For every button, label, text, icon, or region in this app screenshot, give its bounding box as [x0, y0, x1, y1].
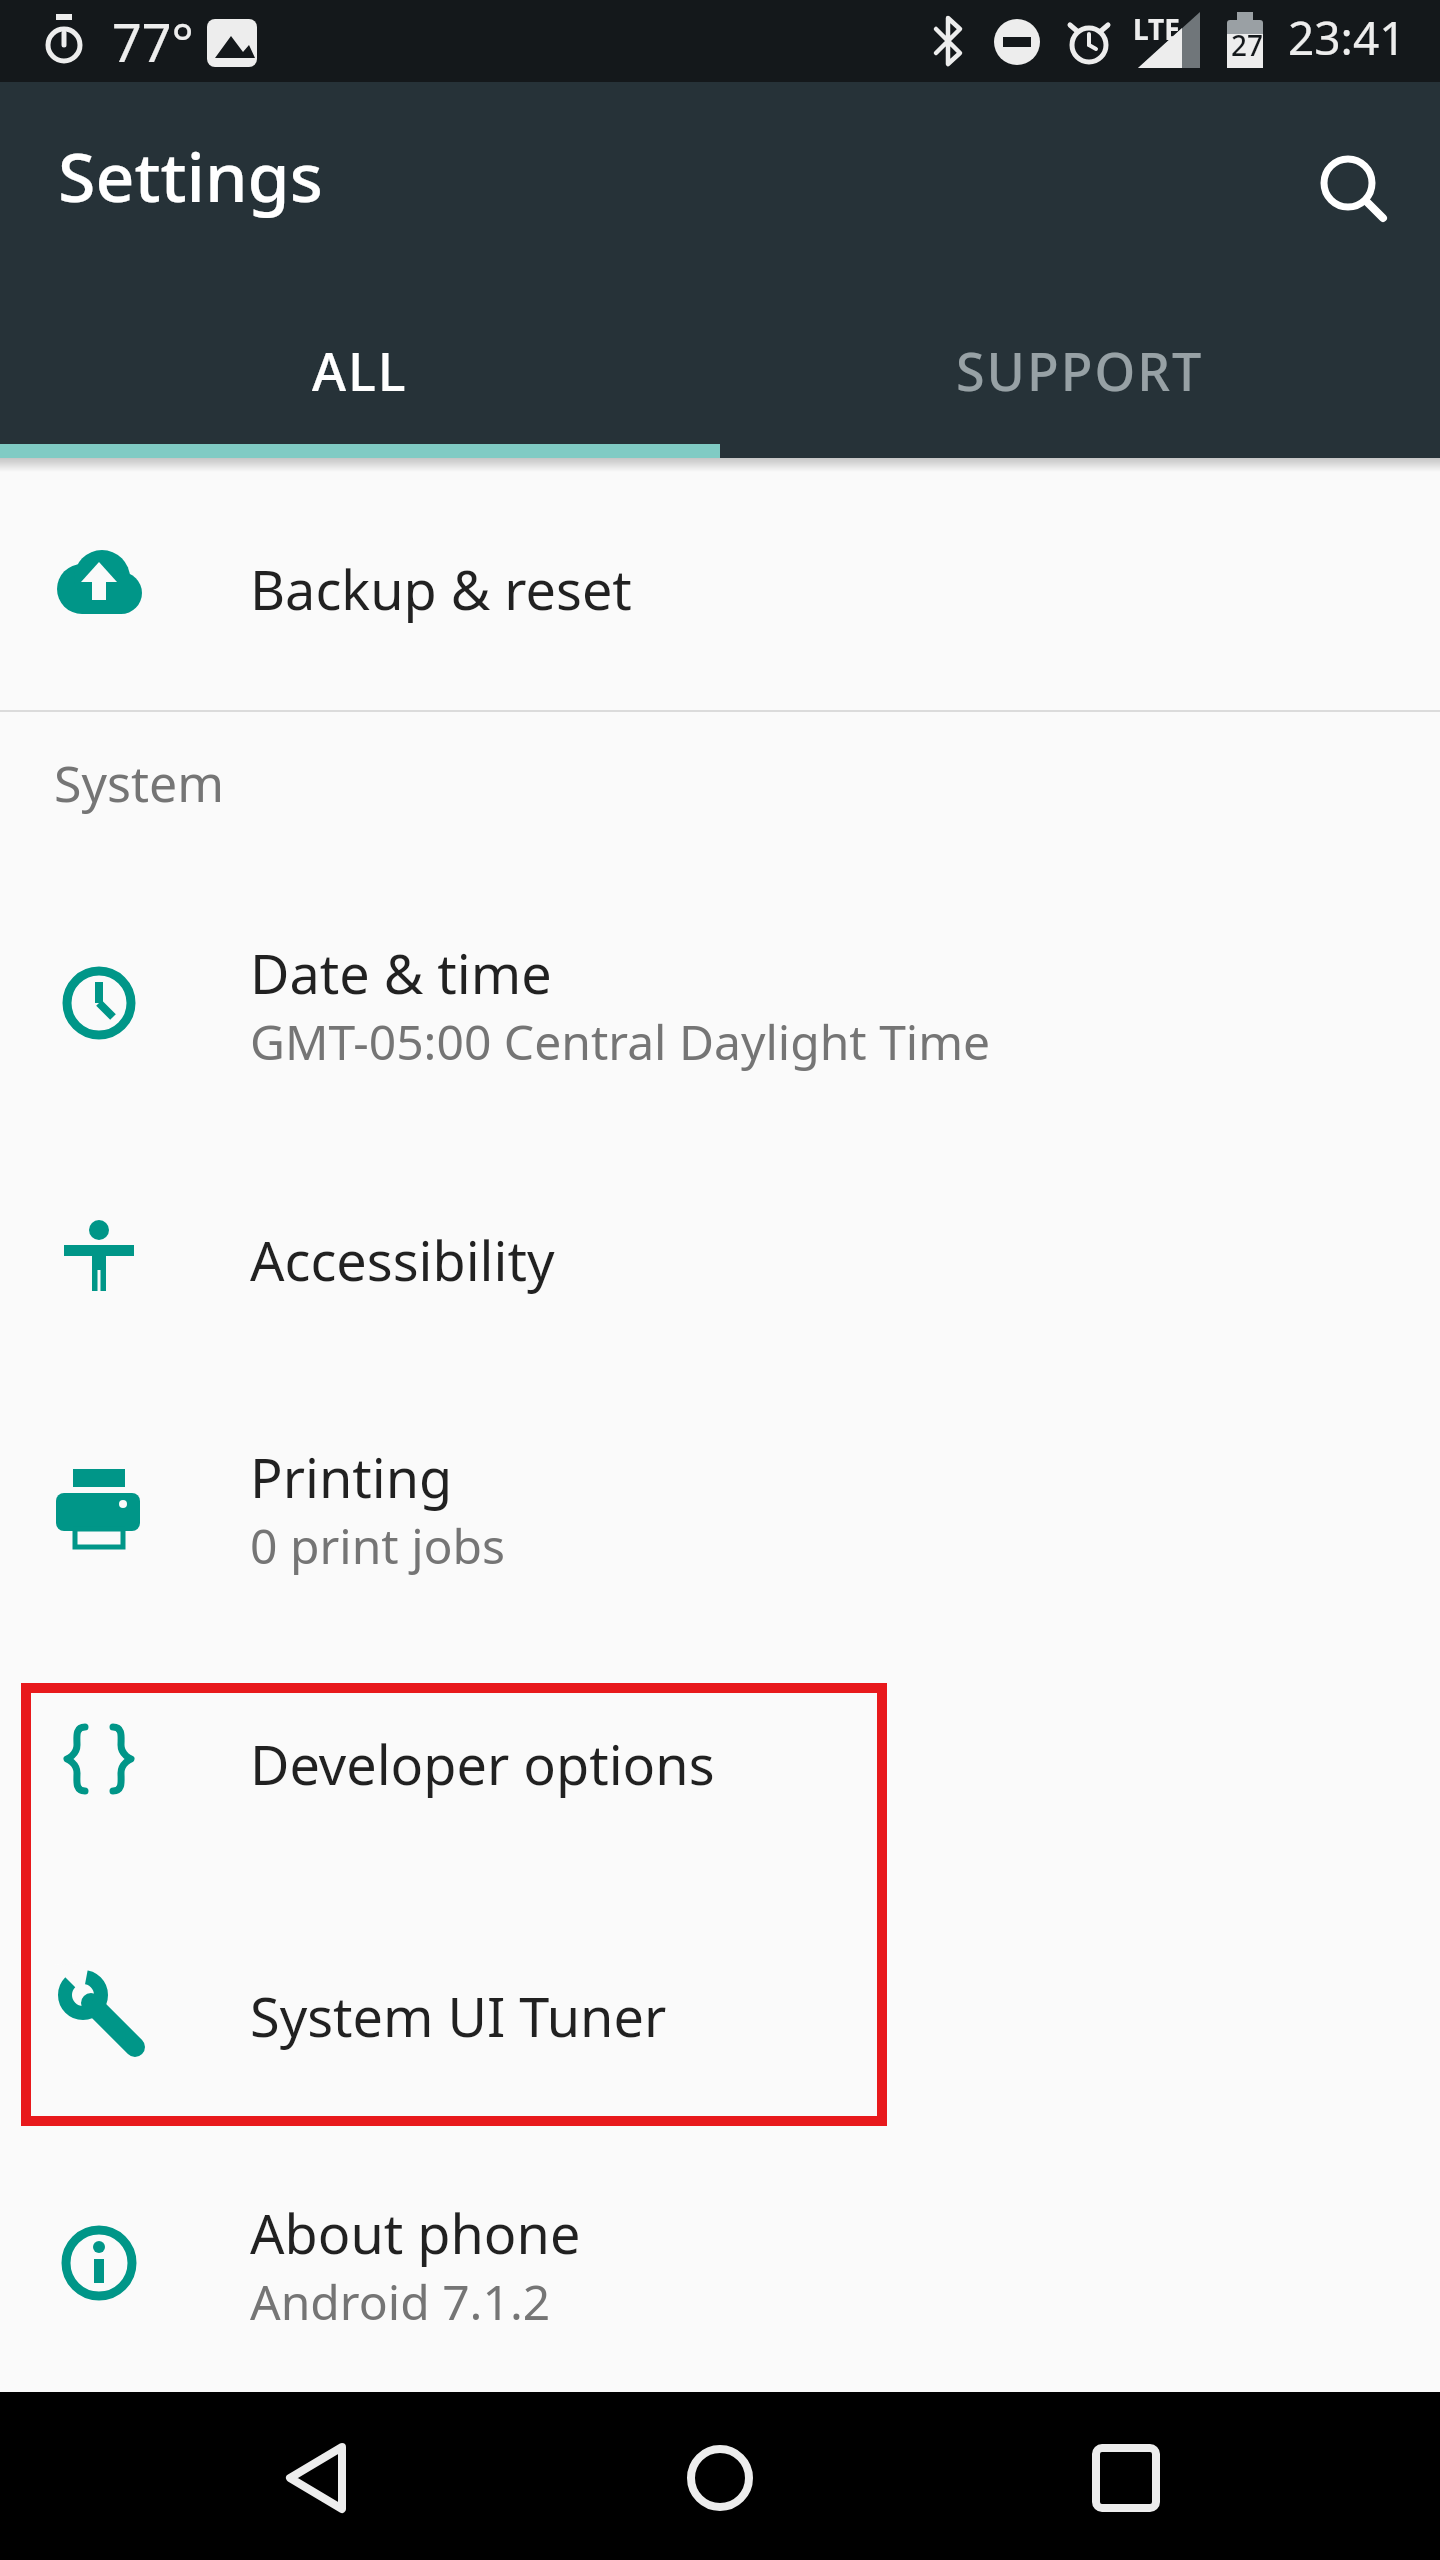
staticText: 23:41 — [1288, 6, 1406, 69]
staticText: Printing — [250, 1440, 453, 1514]
staticText: GMT-05:00 Central Daylight Time — [250, 1009, 991, 1074]
staticText: 77° — [112, 6, 194, 77]
staticText: LTE — [1133, 10, 1180, 48]
button[interactable] — [960, 2392, 1440, 2560]
staticText: SUPPORT — [956, 335, 1204, 406]
staticText: 0 print jobs — [250, 1513, 506, 1578]
staticText: System — [54, 749, 224, 817]
button[interactable]: Printing — [0, 1381, 1440, 1633]
staticText: Settings — [58, 129, 323, 222]
staticText: 27 — [1231, 26, 1264, 64]
button[interactable] — [0, 2392, 480, 2560]
button[interactable]: SUPPORT — [720, 282, 1440, 458]
button[interactable]: Date & time — [0, 877, 1440, 1129]
staticText: Accessibility — [250, 1223, 555, 1297]
staticText: ALL — [312, 335, 408, 406]
button[interactable] — [1322, 157, 1386, 221]
staticText: Date & time — [250, 936, 552, 1010]
button[interactable]: Developer options — [0, 1633, 1440, 1885]
button[interactable]: ALL — [0, 282, 720, 458]
button[interactable]: Accessibility — [0, 1129, 1440, 1381]
staticText: Developer options — [250, 1727, 715, 1801]
button[interactable] — [480, 2392, 960, 2560]
staticText: Backup & reset — [250, 552, 632, 626]
button[interactable]: Backup & reset — [0, 458, 1440, 710]
staticText: System UI Tuner — [250, 1979, 667, 2053]
staticText: About phone — [250, 2196, 581, 2270]
button[interactable]: System UI Tuner — [0, 1885, 1440, 2137]
staticText: Android 7.1.2 — [250, 2269, 551, 2334]
button[interactable]: About phone — [0, 2137, 1440, 2389]
